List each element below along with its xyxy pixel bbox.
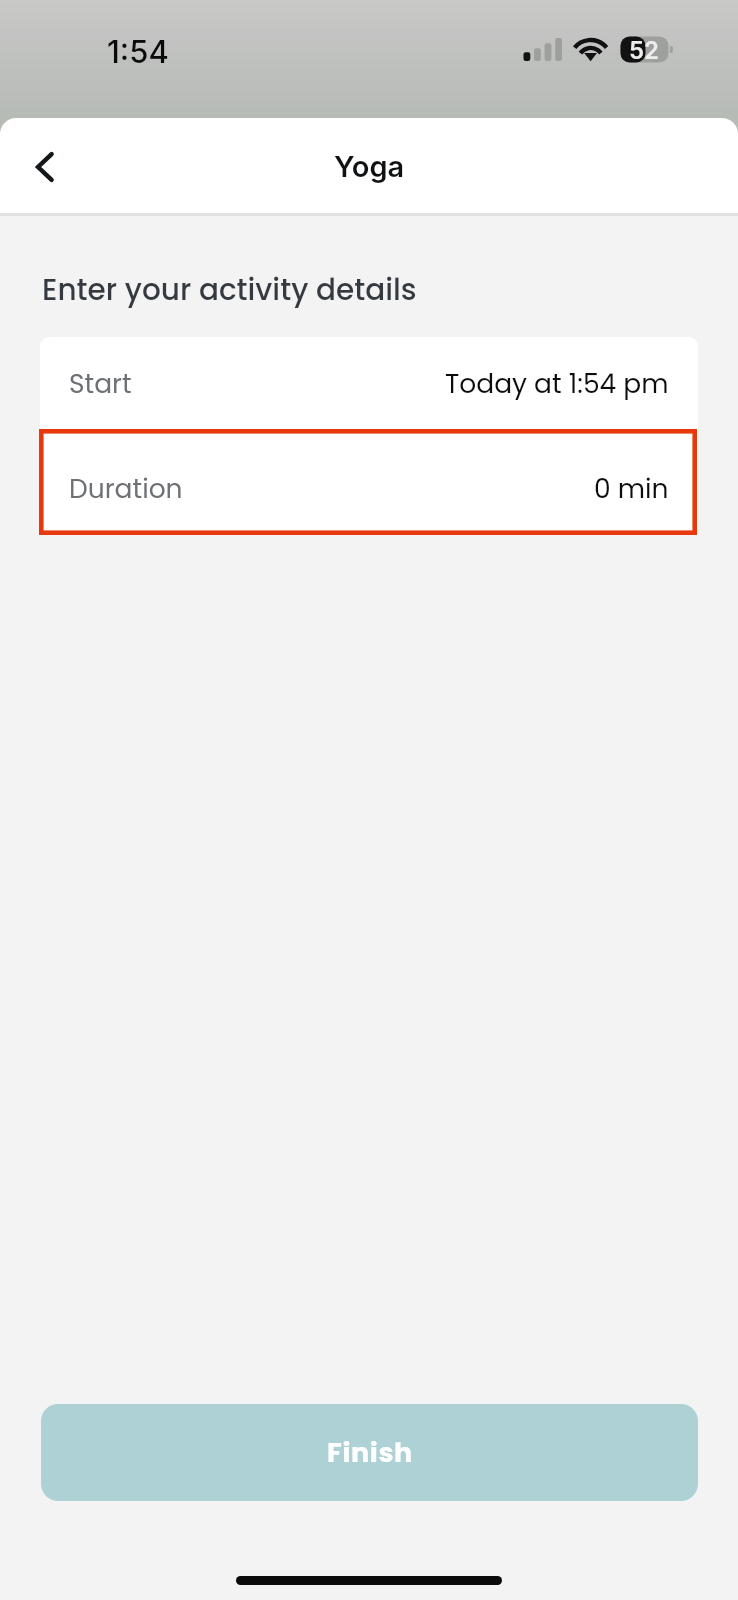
staticText: 52 bbox=[629, 36, 660, 62]
staticText: Enter your activity details bbox=[42, 269, 417, 310]
button[interactable]: Duration bbox=[40, 436, 698, 535]
staticText: Today at 1:54 pm bbox=[445, 365, 669, 402]
button[interactable]: Start bbox=[40, 337, 698, 436]
staticText: Start bbox=[69, 365, 132, 402]
staticText: Yoga bbox=[334, 149, 405, 184]
button[interactable]: Finish bbox=[41, 1404, 698, 1501]
staticText: Finish bbox=[327, 1434, 413, 1472]
staticText: Duration bbox=[69, 470, 183, 507]
staticText: 0 min bbox=[594, 470, 669, 507]
button[interactable]: Back bbox=[12, 134, 78, 200]
staticText: 1:54 bbox=[107, 33, 169, 71]
